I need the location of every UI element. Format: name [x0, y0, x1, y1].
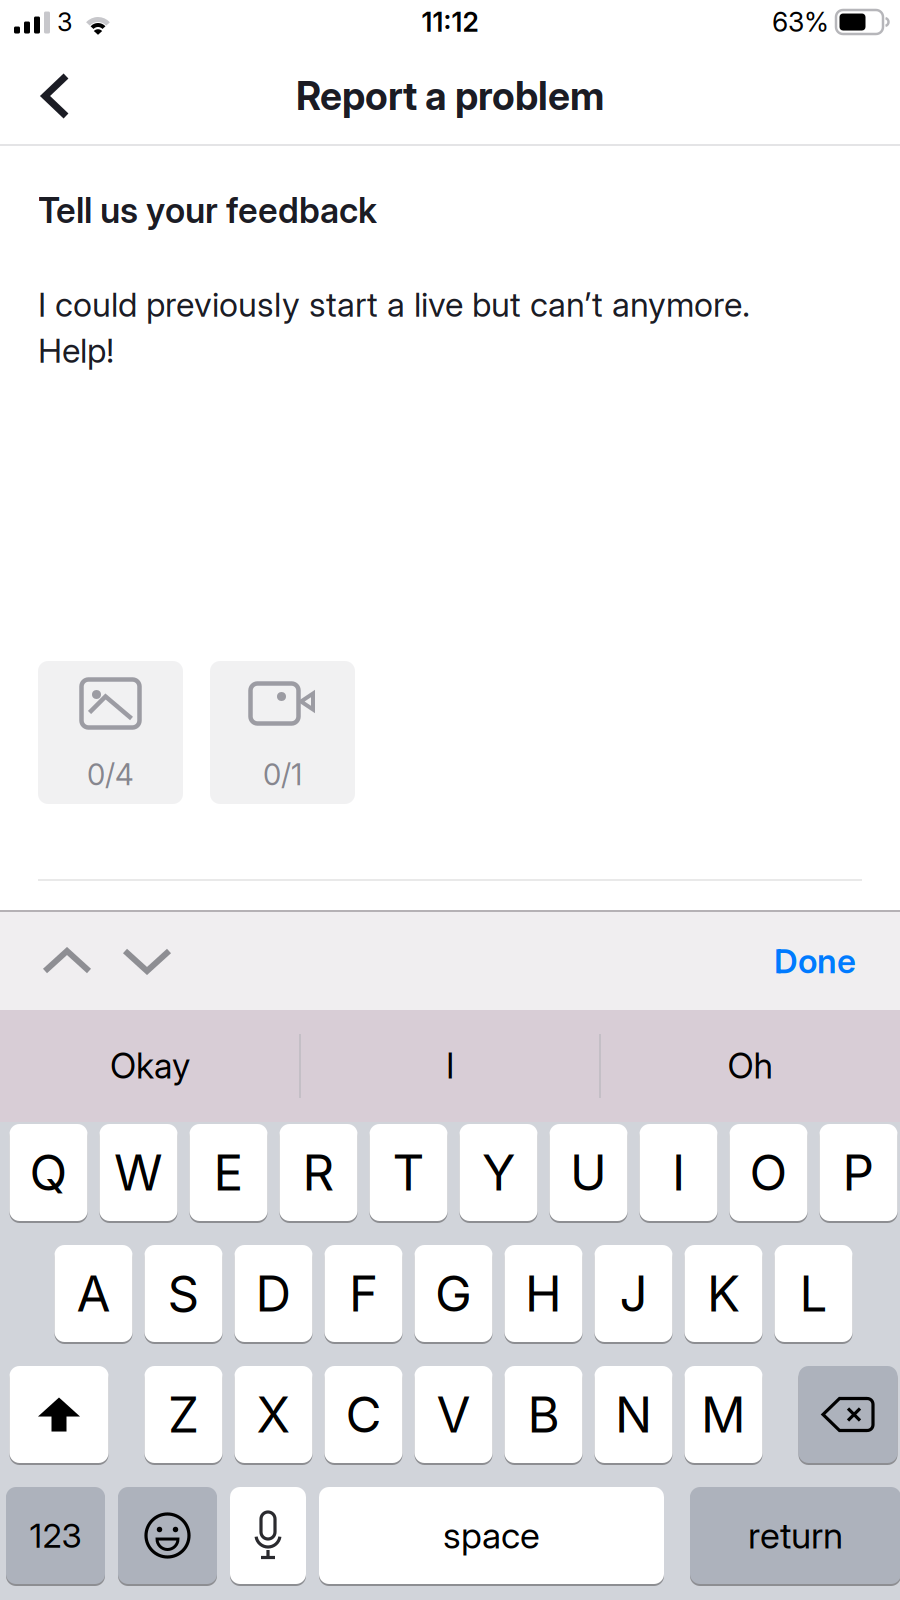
staticText: N	[615, 1385, 652, 1444]
button[interactable]: 0/4	[38, 661, 183, 804]
button[interactable]: L	[774, 1245, 852, 1342]
button[interactable]: K	[684, 1245, 762, 1342]
button[interactable]: V	[414, 1366, 492, 1463]
staticText: W	[114, 1143, 163, 1202]
button[interactable]: O	[729, 1124, 807, 1221]
staticText: X	[256, 1385, 290, 1444]
staticText: Q	[29, 1143, 67, 1202]
button[interactable]: Y	[459, 1124, 537, 1221]
button[interactable]	[798, 1366, 897, 1463]
staticText: P	[842, 1143, 874, 1202]
staticText: K	[707, 1264, 740, 1323]
staticText: space	[443, 1514, 540, 1557]
button[interactable]: return	[690, 1487, 900, 1584]
staticText: Tell us your feedback	[38, 190, 377, 231]
staticText: H	[525, 1264, 562, 1323]
staticText: U	[570, 1143, 607, 1202]
button[interactable]: E	[189, 1124, 267, 1221]
button[interactable]: 0/1	[210, 661, 355, 804]
button[interactable]: S	[144, 1245, 222, 1342]
staticText: B	[527, 1385, 559, 1444]
staticText: M	[701, 1385, 746, 1444]
staticText: Report a problem	[296, 73, 604, 119]
staticText: E	[213, 1143, 243, 1202]
button[interactable]: X	[234, 1366, 312, 1463]
staticText: 0/1	[263, 757, 302, 792]
button[interactable]	[118, 1487, 217, 1584]
button[interactable]: J	[594, 1245, 672, 1342]
staticText: V	[436, 1385, 470, 1444]
button[interactable]: Z	[144, 1366, 222, 1463]
button[interactable]: Okay	[0, 1046, 300, 1086]
staticText: Z	[168, 1385, 199, 1444]
staticText: R	[302, 1143, 334, 1202]
button[interactable]	[230, 1487, 306, 1584]
button[interactable]: F	[324, 1245, 402, 1342]
staticText: C	[345, 1385, 381, 1444]
staticText: Done	[774, 941, 856, 981]
button[interactable]: T	[369, 1124, 447, 1221]
button[interactable]: C	[324, 1366, 402, 1463]
staticText: S	[167, 1264, 199, 1323]
button[interactable]: W	[99, 1124, 177, 1221]
staticText: I	[672, 1143, 685, 1202]
button[interactable]: Oh	[600, 1046, 900, 1086]
staticText: J	[619, 1264, 647, 1323]
button[interactable]: space	[319, 1487, 664, 1584]
staticText: 63%	[772, 6, 829, 38]
staticText: I	[446, 1046, 454, 1086]
button[interactable]: M	[684, 1366, 762, 1463]
button[interactable]: I	[300, 1046, 600, 1086]
button[interactable]: N	[594, 1366, 672, 1463]
staticText: A	[76, 1264, 110, 1323]
staticText: G	[435, 1264, 472, 1323]
staticText: F	[349, 1264, 378, 1323]
staticText: 0/4	[87, 757, 134, 792]
button[interactable]: I	[639, 1124, 717, 1221]
button[interactable]: P	[819, 1124, 897, 1221]
button[interactable]: U	[549, 1124, 627, 1221]
staticText: 11:12	[421, 6, 478, 38]
staticText: I could previously start a live but can’…	[38, 285, 750, 324]
staticText: Y	[482, 1143, 515, 1202]
staticText: return	[748, 1514, 843, 1557]
button[interactable]: Done	[774, 941, 856, 981]
button[interactable]: Q	[9, 1124, 87, 1221]
staticText: T	[392, 1143, 424, 1202]
button[interactable]: D	[234, 1245, 312, 1342]
staticText: L	[799, 1264, 827, 1323]
staticText: Help!	[38, 331, 114, 370]
button[interactable]: H	[504, 1245, 582, 1342]
staticText: Oh	[727, 1046, 772, 1086]
button[interactable]	[42, 945, 92, 977]
button[interactable]: A	[54, 1245, 132, 1342]
button[interactable]: R	[279, 1124, 357, 1221]
staticText: Okay	[110, 1046, 190, 1086]
button[interactable]	[0, 72, 73, 120]
button[interactable]	[9, 1366, 108, 1463]
button[interactable]: G	[414, 1245, 492, 1342]
staticText: 123	[29, 1516, 81, 1555]
button[interactable]: 123	[6, 1487, 105, 1584]
staticText: O	[749, 1143, 787, 1202]
button[interactable]	[122, 945, 172, 977]
staticText: 3	[57, 7, 73, 37]
staticText: D	[255, 1264, 291, 1323]
button[interactable]: B	[504, 1366, 582, 1463]
